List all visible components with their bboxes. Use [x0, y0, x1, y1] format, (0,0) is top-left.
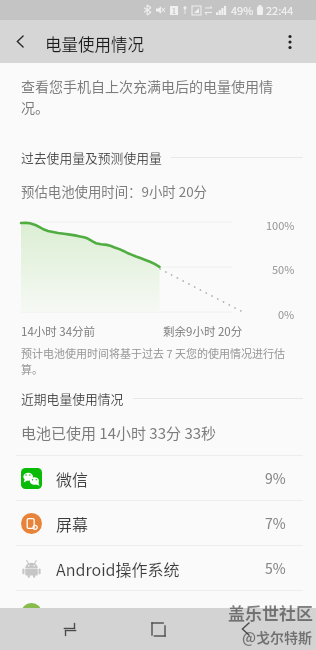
staticText: 0%: [278, 306, 295, 322]
staticText: 1: [172, 6, 176, 15]
button[interactable]: 屏幕: [0, 501, 316, 545]
staticText: 49%: [231, 2, 254, 18]
staticText: Android操作系统: [56, 557, 180, 580]
staticText: 电池已使用 14小时 33分 33秒: [21, 422, 217, 444]
staticText: 盖乐世社区: [228, 600, 313, 625]
staticText: 14小时 34分前: [21, 323, 96, 340]
staticText: 预估电池使用时间：9小时 20分: [21, 181, 207, 200]
staticText: 查看您手机自上次充满电后的电量使用情况。: [21, 76, 279, 117]
staticText: 过去使用量及预测使用量: [21, 148, 162, 167]
button[interactable]: Android操作系统: [0, 546, 316, 590]
button[interactable]: Recent apps: [56, 608, 84, 650]
button[interactable]: [0, 591, 316, 635]
staticText: 近期电量使用情况: [21, 389, 124, 408]
button[interactable]: Back: [232, 608, 260, 650]
staticText: 22:44: [266, 2, 294, 18]
staticText: 9%: [265, 468, 286, 488]
button[interactable]: 微信: [0, 456, 316, 500]
staticText: 5%: [265, 558, 286, 578]
staticText: 电量使用情况: [45, 32, 144, 56]
staticText: 屏幕: [56, 512, 89, 535]
button[interactable]: More options: [272, 20, 308, 63]
staticText: 微信: [56, 467, 89, 490]
staticText: 预计电池使用时间将基于过去 7 天您的使用情况进行估算。: [21, 345, 289, 377]
button[interactable]: Home: [144, 608, 172, 650]
staticText: 50%: [272, 261, 295, 277]
staticText: 剩余9小时 20分: [163, 323, 243, 340]
staticText: 100%: [266, 217, 295, 233]
staticText: 7%: [265, 513, 286, 533]
button[interactable]: Back: [0, 20, 40, 63]
staticText: @戈尔特斯: [242, 627, 313, 647]
